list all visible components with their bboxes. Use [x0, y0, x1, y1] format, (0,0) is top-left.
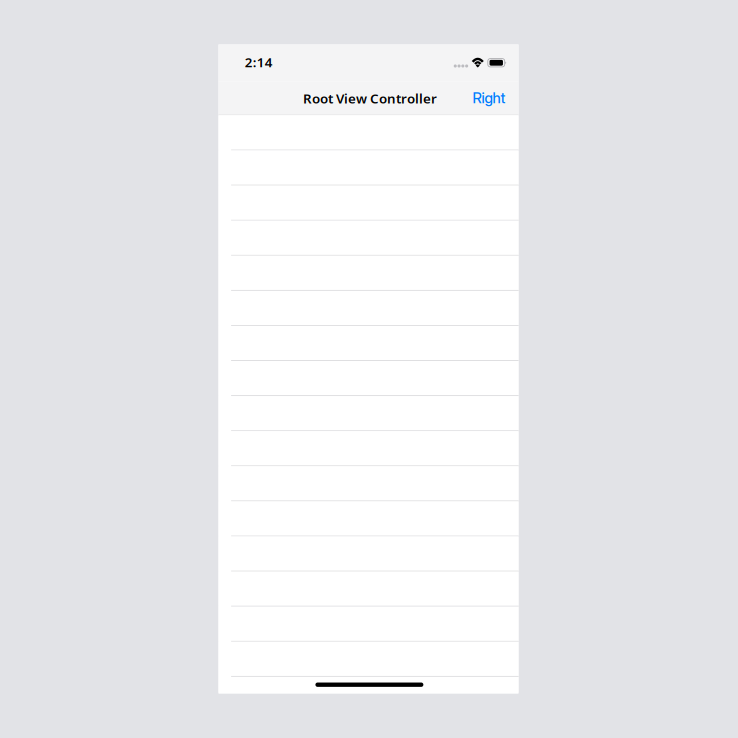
- button[interactable]: Right: [466, 82, 513, 114]
- staticText: Right: [473, 89, 506, 107]
- button[interactable]: [218, 642, 518, 677]
- button[interactable]: [218, 150, 518, 186]
- button[interactable]: [218, 431, 518, 466]
- button[interactable]: [218, 396, 518, 431]
- button[interactable]: [218, 221, 518, 256]
- staticText: Root View Controller: [303, 89, 437, 107]
- scrollView: [218, 115, 518, 712]
- button[interactable]: [218, 256, 518, 291]
- navigationBar: Root View Controller: [218, 81, 518, 114]
- button[interactable]: [218, 466, 518, 501]
- button[interactable]: [218, 536, 518, 572]
- button[interactable]: [218, 291, 518, 326]
- button[interactable]: [218, 361, 518, 396]
- button[interactable]: [218, 572, 518, 607]
- staticText: 2:14: [245, 53, 273, 71]
- button[interactable]: [218, 326, 518, 361]
- button[interactable]: [218, 607, 518, 642]
